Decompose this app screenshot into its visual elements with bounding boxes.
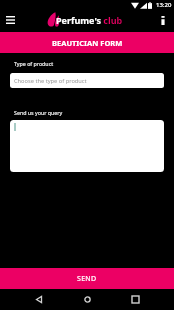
staticText: SEND	[77, 274, 97, 284]
button[interactable]: BEAUTICIAN FORM	[0, 32, 174, 53]
staticText: 13:20	[156, 1, 172, 9]
staticText: Send us your query	[14, 109, 63, 116]
button[interactable]: Home	[77, 289, 98, 310]
staticText: BEAUTICIAN FORM	[52, 38, 123, 48]
button[interactable]: Choose the type of product	[10, 73, 164, 88]
button[interactable]: Back	[28, 289, 49, 310]
staticText: Type of product	[14, 60, 54, 67]
staticText: Choose the type of product	[14, 77, 87, 85]
staticText: Perfume's club	[56, 14, 123, 26]
button[interactable]: Information	[155, 12, 171, 28]
button[interactable]	[10, 120, 164, 172]
button[interactable]: Recent apps	[125, 289, 146, 310]
button[interactable]: SEND	[0, 268, 174, 289]
button[interactable]: Open navigation menu	[2, 12, 18, 28]
